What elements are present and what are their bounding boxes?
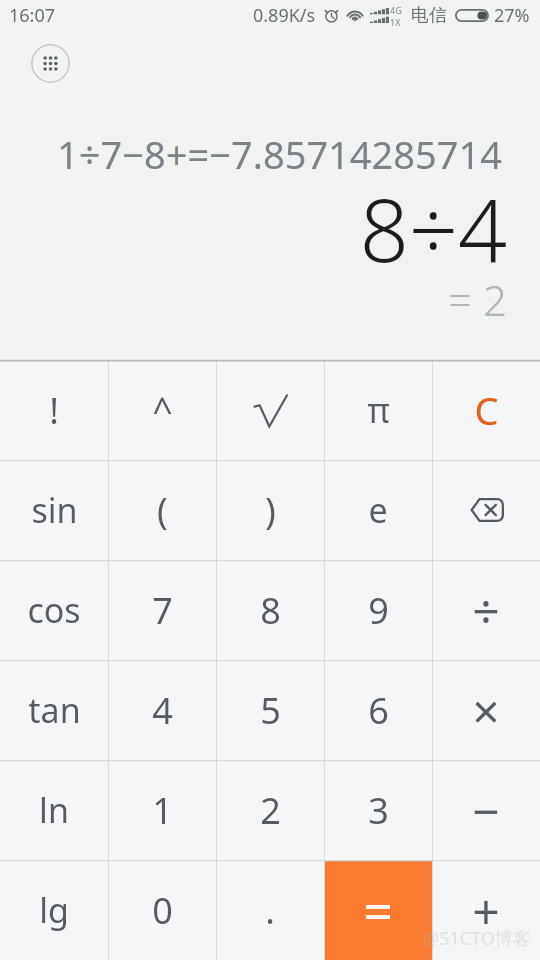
staticText: ^ bbox=[152, 386, 173, 435]
staticText: 5 bbox=[260, 686, 281, 735]
staticText: + bbox=[472, 878, 500, 943]
staticText: = 2 bbox=[448, 271, 507, 328]
staticText: − bbox=[472, 778, 500, 843]
button[interactable]: ) bbox=[216, 460, 324, 560]
button[interactable]: 9 bbox=[324, 560, 432, 660]
button[interactable]: ln bbox=[0, 760, 108, 860]
staticText: 16:07 bbox=[9, 3, 56, 28]
staticText: π bbox=[367, 387, 390, 433]
button[interactable]: 0 bbox=[108, 860, 216, 960]
staticText: @51CTO博客 bbox=[423, 926, 531, 951]
staticText: 1÷7−8+=−7.85714285714 bbox=[57, 128, 502, 180]
staticText: sin bbox=[31, 487, 78, 533]
staticText: 8÷4 bbox=[359, 170, 507, 287]
staticText: 4G bbox=[390, 4, 402, 16]
button[interactable]: 4 bbox=[108, 660, 216, 760]
button[interactable]: Backspace bbox=[432, 460, 540, 560]
staticText: 1X bbox=[390, 16, 401, 28]
button[interactable]: 2 bbox=[216, 760, 324, 860]
staticText: 9 bbox=[368, 586, 389, 635]
staticText: 6 bbox=[368, 686, 389, 735]
button[interactable]: C bbox=[432, 360, 540, 460]
staticText: 0 bbox=[152, 886, 173, 935]
button[interactable]: 1 bbox=[108, 760, 216, 860]
staticText: . bbox=[265, 886, 275, 935]
button[interactable]: 3 bbox=[324, 760, 432, 860]
button[interactable]: Square root bbox=[216, 360, 324, 460]
button[interactable]: 7 bbox=[108, 560, 216, 660]
staticText: 8 bbox=[260, 586, 281, 635]
button[interactable]: π bbox=[324, 360, 432, 460]
button[interactable]: ! bbox=[0, 360, 108, 460]
button[interactable]: 8 bbox=[216, 560, 324, 660]
staticText: 电信 bbox=[411, 4, 447, 27]
staticText: × bbox=[472, 678, 500, 743]
button[interactable]: tan bbox=[0, 660, 108, 760]
button[interactable]: 6 bbox=[324, 660, 432, 760]
staticText: 3 bbox=[368, 786, 389, 835]
staticText: cos bbox=[27, 587, 81, 633]
staticText: 1 bbox=[152, 786, 173, 835]
staticText: 4 bbox=[152, 686, 173, 735]
staticText: 27% bbox=[494, 3, 530, 28]
staticText: ( bbox=[157, 486, 168, 535]
staticText: tan bbox=[28, 687, 81, 733]
staticText: 7 bbox=[152, 586, 173, 635]
button[interactable]: × bbox=[432, 660, 540, 760]
staticText: lg bbox=[39, 887, 69, 933]
button[interactable]: + bbox=[432, 860, 540, 960]
button[interactable]: = bbox=[324, 860, 432, 960]
button[interactable]: ( bbox=[108, 460, 216, 560]
staticText: = bbox=[363, 875, 393, 946]
button[interactable]: Menu bbox=[31, 44, 70, 83]
button[interactable]: sin bbox=[0, 460, 108, 560]
staticText: ! bbox=[49, 386, 59, 435]
button[interactable]: lg bbox=[0, 860, 108, 960]
button[interactable]: . bbox=[216, 860, 324, 960]
button[interactable]: cos bbox=[0, 560, 108, 660]
staticText: 2 bbox=[260, 786, 281, 835]
button[interactable]: ^ bbox=[108, 360, 216, 460]
button[interactable]: 5 bbox=[216, 660, 324, 760]
button[interactable]: ÷ bbox=[432, 560, 540, 660]
staticText: C bbox=[474, 384, 499, 436]
staticText: e bbox=[368, 487, 388, 533]
staticText: 0.89K/s bbox=[253, 3, 316, 28]
staticText: ) bbox=[265, 486, 276, 535]
button[interactable]: e bbox=[324, 460, 432, 560]
button[interactable]: − bbox=[432, 760, 540, 860]
staticText: ln bbox=[39, 787, 69, 833]
staticText: ÷ bbox=[472, 578, 500, 643]
